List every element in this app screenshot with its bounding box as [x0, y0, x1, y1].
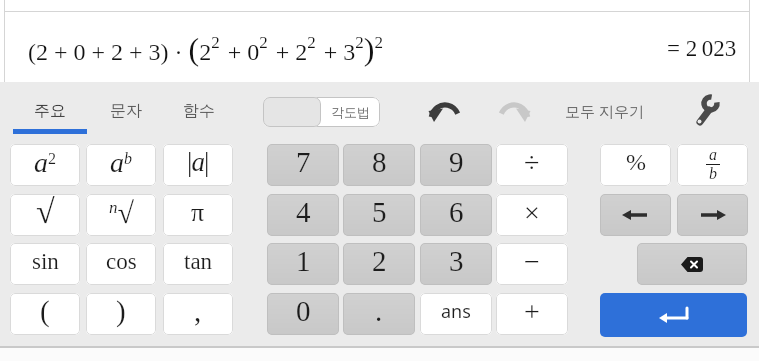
staticText: cos [106, 249, 137, 274]
button[interactable]: a [677, 144, 748, 186]
button[interactable]: − [496, 243, 568, 285]
button[interactable]: √ [10, 194, 80, 236]
button[interactable] [693, 94, 721, 126]
staticText: (2 + 0 + 2 + 3) · (22 + 02 + 22 + 32)2 [28, 31, 384, 66]
staticText: π [191, 198, 205, 227]
button[interactable] [677, 194, 748, 236]
button[interactable]: + [496, 293, 568, 335]
button[interactable]: 4 [267, 194, 339, 236]
button[interactable] [637, 243, 747, 285]
staticText: |a| [187, 147, 209, 177]
button[interactable]: a2 [10, 144, 80, 186]
staticText: . [375, 295, 383, 327]
staticText: √ [36, 194, 55, 231]
staticText: a2 [34, 147, 56, 178]
button[interactable]: cos [86, 243, 156, 285]
button[interactable]: 문자 [89, 95, 162, 127]
button[interactable]: sin [10, 243, 80, 285]
button[interactable]: tan [163, 243, 233, 285]
button[interactable]: 모두 지우기 [556, 95, 653, 127]
staticText: % [626, 149, 646, 176]
staticText: 각도법 [331, 104, 370, 120]
button[interactable]: ans [420, 293, 492, 335]
staticText: 2 [372, 245, 387, 277]
button[interactable]: % [600, 144, 671, 186]
staticText: a [709, 146, 717, 164]
staticText: + [524, 296, 540, 327]
button[interactable]: 6 [420, 194, 492, 236]
button[interactable] [428, 95, 462, 123]
staticText: 5 [372, 196, 387, 228]
staticText: 6 [449, 196, 464, 228]
staticText: 7 [296, 146, 311, 178]
button[interactable]: 7 [267, 144, 339, 186]
button[interactable]: ab [86, 144, 156, 186]
staticText: 8 [372, 146, 387, 178]
staticText: 9 [449, 146, 464, 178]
staticText: ) [116, 295, 126, 327]
staticText: n√ [109, 196, 134, 229]
button[interactable]: n√ [86, 194, 156, 236]
button[interactable]: . [343, 293, 415, 335]
staticText: sin [32, 249, 59, 274]
button[interactable]: 0 [267, 293, 339, 335]
button[interactable]: 3 [420, 243, 492, 285]
staticText: 4 [296, 196, 311, 228]
button[interactable]: 함수 [162, 95, 235, 127]
staticText: 모두 지우기 [565, 101, 644, 121]
staticText: ÷ [524, 147, 540, 178]
staticText: 3 [449, 245, 464, 277]
button[interactable]: 5 [343, 194, 415, 236]
staticText: ( [40, 295, 50, 327]
button[interactable]: × [496, 194, 568, 236]
button[interactable] [497, 95, 531, 123]
staticText: , [194, 295, 202, 327]
staticText: tan [184, 249, 213, 274]
button[interactable] [600, 293, 747, 337]
button[interactable]: ) [86, 293, 156, 335]
button[interactable]: 9 [420, 144, 492, 186]
staticText: 0 [296, 295, 311, 327]
staticText: 1 [296, 245, 311, 277]
staticText: 주요 [34, 101, 66, 121]
button[interactable]: 8 [343, 144, 415, 186]
button[interactable]: , [163, 293, 233, 335]
staticText: ans [441, 299, 471, 324]
button[interactable]: ( [10, 293, 80, 335]
staticText: b [709, 165, 717, 183]
staticText: ab [110, 147, 132, 178]
staticText: − [524, 246, 540, 277]
staticText: 함수 [183, 101, 215, 121]
button[interactable]: 주요 [13, 95, 87, 127]
button[interactable]: |a| [163, 144, 233, 186]
button[interactable]: ÷ [496, 144, 568, 186]
button[interactable]: 2 [343, 243, 415, 285]
button[interactable] [600, 194, 671, 236]
staticText: = 2 023 [667, 36, 737, 61]
button[interactable]: 1 [267, 243, 339, 285]
button[interactable] [263, 97, 380, 127]
button[interactable]: π [163, 194, 233, 236]
staticText: × [524, 197, 540, 228]
staticText: 문자 [110, 101, 142, 121]
